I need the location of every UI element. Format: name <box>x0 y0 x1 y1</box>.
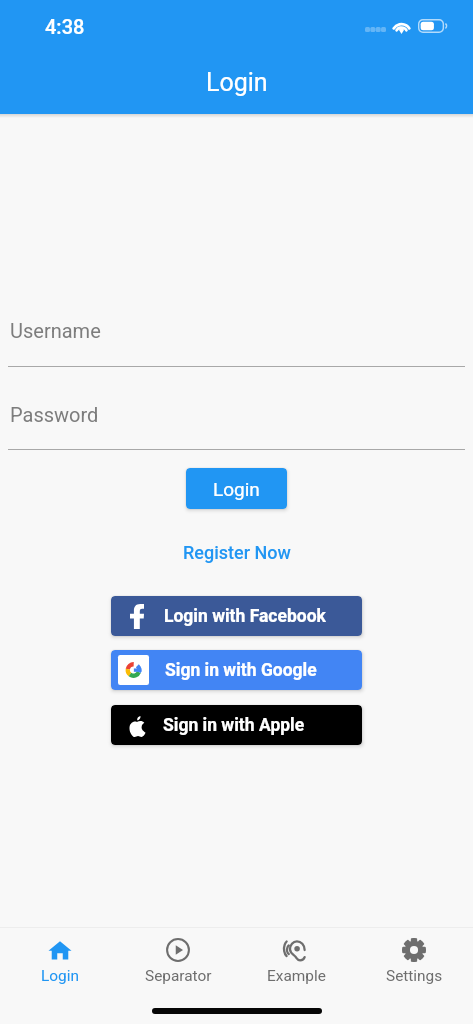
staticText: Password <box>10 403 99 426</box>
staticText: Sign in with Google <box>165 660 317 681</box>
button[interactable]: Sign in with Apple <box>111 705 362 745</box>
button[interactable]: Example <box>237 928 355 998</box>
staticText: Separator <box>145 967 212 985</box>
staticText: Register Now <box>183 542 291 563</box>
staticText: Login <box>41 967 79 985</box>
staticText: Login <box>206 68 268 97</box>
staticText: Sign in with Apple <box>163 715 305 736</box>
button[interactable]: Login <box>186 468 287 509</box>
button[interactable]: Login <box>0 928 119 998</box>
button[interactable]: Separator <box>119 928 237 998</box>
staticText: Example <box>267 967 326 985</box>
staticText: Settings <box>386 967 443 985</box>
staticText: Login <box>213 478 260 500</box>
button[interactable]: Sign in with Google <box>111 650 362 690</box>
staticText: Login with Facebook <box>164 606 326 627</box>
staticText: Username <box>10 319 101 342</box>
staticText: 4:38 <box>45 15 85 38</box>
button[interactable]: Register Now <box>173 537 301 568</box>
button[interactable]: Login with Facebook <box>111 596 362 636</box>
button[interactable]: Settings <box>355 928 473 998</box>
